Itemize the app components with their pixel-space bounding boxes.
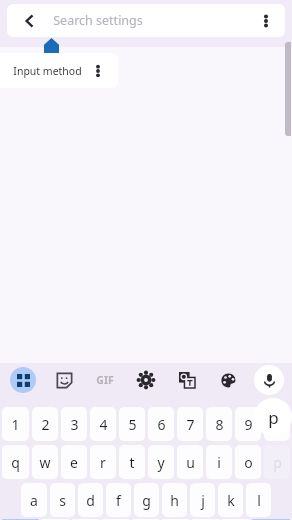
- button[interactable]: e: [61, 445, 87, 479]
- button[interactable]: d: [78, 483, 103, 517]
- staticText: 6: [157, 415, 166, 434]
- button[interactable]: o: [235, 445, 261, 479]
- staticText: 5: [128, 415, 137, 434]
- staticText: Input method: [13, 64, 82, 78]
- staticText: g: [142, 491, 151, 510]
- staticText: k: [227, 491, 235, 510]
- button[interactable]: [252, 519, 290, 520]
- staticText: f: [116, 491, 121, 510]
- button[interactable]: Back: [17, 8, 43, 34]
- button[interactable]: Back: [7, 4, 285, 37]
- staticText: GIF: [96, 373, 114, 387]
- button[interactable]: 1: [2, 407, 29, 441]
- button[interactable]: 4: [90, 407, 116, 441]
- staticText: s: [59, 491, 66, 510]
- button[interactable]: Input method options: [88, 61, 108, 81]
- button[interactable]: Input method: [0, 53, 118, 88]
- button[interactable]: h: [162, 483, 187, 517]
- button[interactable]: u: [177, 445, 203, 479]
- button[interactable]: i: [206, 445, 232, 479]
- staticText: r: [100, 453, 106, 472]
- button[interactable]: 0: [264, 407, 290, 441]
- button[interactable]: l: [246, 483, 271, 517]
- staticText: 0: [273, 415, 282, 434]
- staticText: o: [244, 453, 253, 472]
- button[interactable]: 7: [177, 407, 203, 441]
- staticText: p: [268, 406, 279, 429]
- button[interactable]: k: [218, 483, 243, 517]
- staticText: l: [257, 491, 261, 510]
- staticText: h: [170, 491, 179, 510]
- staticText: u: [186, 453, 195, 472]
- button[interactable]: More options: [253, 8, 279, 34]
- button[interactable]: r: [90, 445, 116, 479]
- button[interactable]: Stickers: [47, 363, 81, 397]
- staticText: e: [70, 453, 78, 472]
- button[interactable]: a: [21, 483, 47, 517]
- staticText: 3: [70, 415, 79, 434]
- staticText: Search settings: [53, 12, 143, 29]
- button[interactable]: 3: [61, 407, 87, 441]
- button[interactable]: q: [2, 445, 29, 479]
- button[interactable]: 6: [148, 407, 174, 441]
- staticText: d: [86, 491, 95, 510]
- staticText: a: [30, 491, 38, 510]
- button[interactable]: Themes: [211, 363, 245, 397]
- button[interactable]: p: [264, 445, 290, 479]
- button[interactable]: 2: [32, 407, 58, 441]
- staticText: p: [273, 453, 282, 472]
- staticText: i: [217, 453, 221, 472]
- staticText: 8: [215, 415, 224, 434]
- button[interactable]: GIF: [88, 363, 122, 397]
- staticText: q: [11, 453, 20, 472]
- button[interactable]: Settings: [129, 363, 163, 397]
- button[interactable]: [2, 519, 39, 520]
- staticText: 2: [41, 415, 50, 434]
- button[interactable]: f: [106, 483, 131, 517]
- button[interactable]: Voice input: [252, 363, 286, 397]
- button[interactable]: 5: [119, 407, 145, 441]
- button[interactable]: w: [32, 445, 58, 479]
- staticText: 7: [186, 415, 195, 434]
- staticText: t: [129, 453, 135, 472]
- button[interactable]: s: [50, 483, 75, 517]
- staticText: 1: [11, 415, 20, 434]
- staticText: w: [39, 453, 51, 472]
- button[interactable]: Apps: [6, 363, 40, 397]
- button[interactable]: 8: [206, 407, 232, 441]
- button[interactable]: 9: [235, 407, 261, 441]
- staticText: 9: [244, 415, 253, 434]
- button[interactable]: Translate: [170, 363, 204, 397]
- button[interactable]: t: [119, 445, 145, 479]
- staticText: y: [157, 453, 165, 472]
- button[interactable]: g: [134, 483, 159, 517]
- staticText: 4: [99, 415, 108, 434]
- button[interactable]: y: [148, 445, 174, 479]
- button[interactable]: j: [190, 483, 215, 517]
- staticText: j: [201, 491, 205, 510]
